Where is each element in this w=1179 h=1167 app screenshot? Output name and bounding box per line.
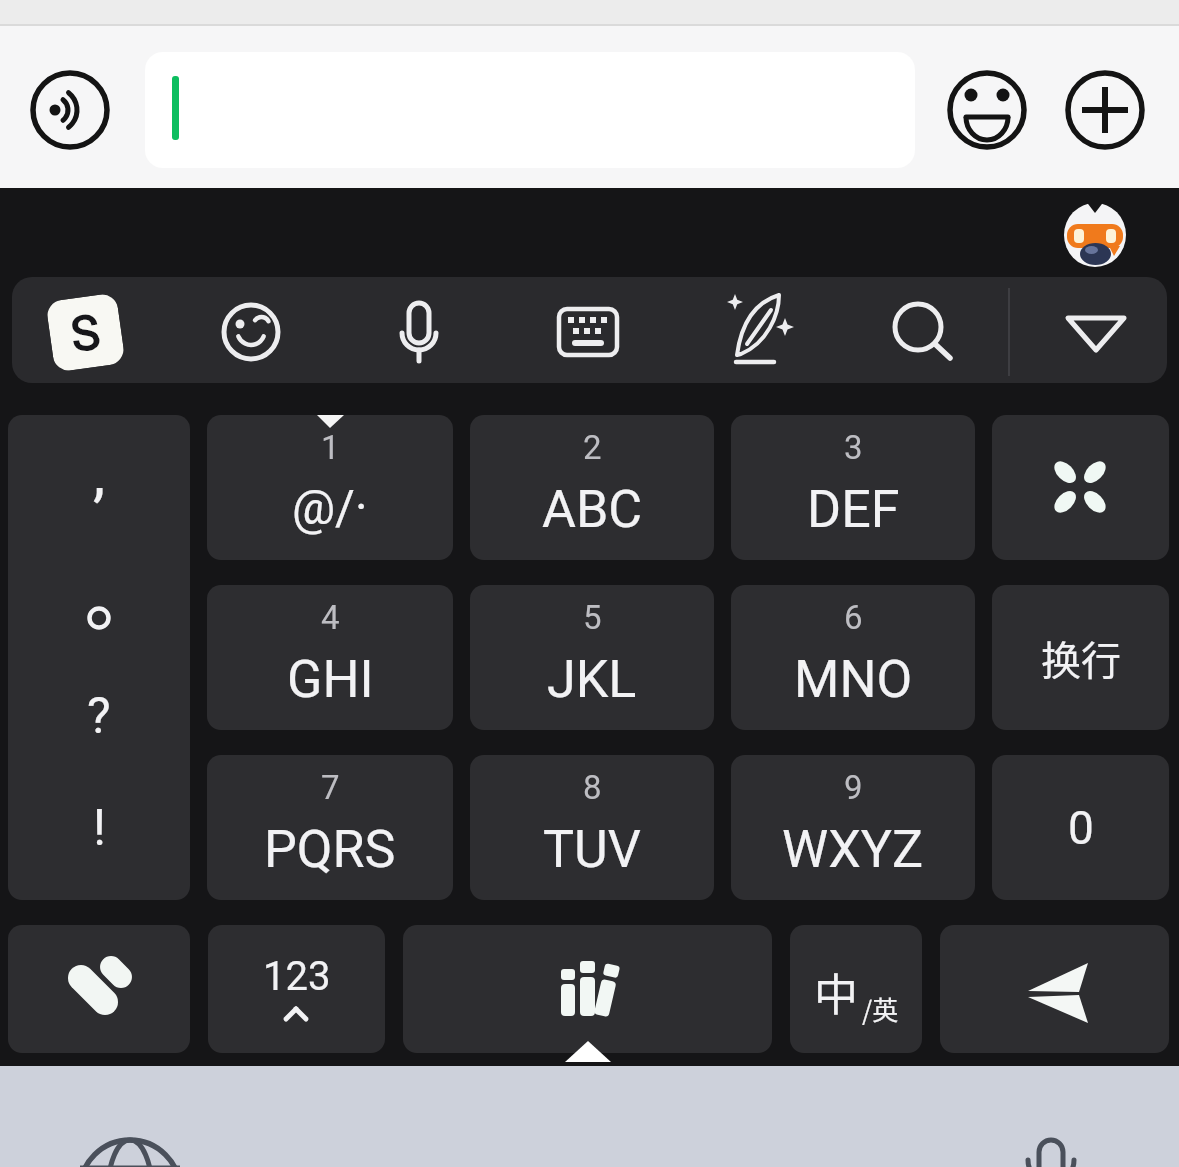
staticText: GHI bbox=[287, 649, 374, 710]
button[interactable] bbox=[8, 925, 190, 1053]
button[interactable] bbox=[992, 415, 1169, 560]
staticText: DEF bbox=[807, 479, 900, 540]
staticText: ! bbox=[93, 799, 106, 858]
button[interactable]: 6 bbox=[731, 585, 975, 730]
staticText: 4 bbox=[321, 598, 340, 637]
button[interactable]: , bbox=[8, 415, 190, 900]
button[interactable] bbox=[35, 284, 135, 378]
button[interactable]: 9 bbox=[731, 755, 975, 900]
staticText: 3 bbox=[844, 428, 863, 467]
button[interactable] bbox=[145, 52, 915, 168]
button[interactable]: 2 bbox=[470, 415, 714, 560]
button[interactable]: 0 bbox=[992, 755, 1169, 900]
button[interactable]: 换行 bbox=[992, 585, 1169, 730]
button[interactable]: 7 bbox=[207, 755, 453, 900]
staticText: 中 bbox=[814, 960, 858, 1024]
staticText: 换行 bbox=[1041, 629, 1121, 687]
button[interactable]: 3 bbox=[731, 415, 975, 560]
staticText: TUV bbox=[543, 819, 641, 880]
button[interactable] bbox=[991, 1110, 1111, 1167]
button[interactable] bbox=[201, 284, 301, 378]
staticText: 6 bbox=[844, 598, 863, 637]
button[interactable] bbox=[70, 1110, 190, 1167]
button[interactable] bbox=[369, 284, 469, 378]
staticText: 2 bbox=[583, 428, 602, 467]
button[interactable] bbox=[1046, 284, 1146, 378]
staticText: 123 bbox=[263, 953, 331, 1000]
staticText: ABC bbox=[542, 479, 643, 540]
button[interactable] bbox=[403, 925, 772, 1053]
button[interactable] bbox=[871, 284, 971, 378]
staticText: 5 bbox=[583, 598, 602, 637]
button[interactable]: 中 bbox=[790, 925, 922, 1053]
button[interactable] bbox=[538, 284, 638, 378]
button[interactable] bbox=[947, 70, 1027, 150]
staticText: ? bbox=[87, 687, 111, 746]
button[interactable] bbox=[940, 925, 1169, 1053]
button[interactable]: 8 bbox=[470, 755, 714, 900]
staticText: 9 bbox=[844, 768, 863, 807]
staticText: , bbox=[93, 437, 106, 510]
staticText: MNO bbox=[794, 649, 913, 710]
button[interactable]: 5 bbox=[470, 585, 714, 730]
button[interactable]: 1 bbox=[207, 415, 453, 560]
staticText: WXYZ bbox=[782, 819, 924, 880]
staticText: JKL bbox=[547, 649, 637, 710]
button[interactable]: 4 bbox=[207, 585, 453, 730]
button[interactable]: 123 bbox=[208, 925, 385, 1053]
staticText: S bbox=[67, 303, 104, 363]
staticText: 7 bbox=[321, 768, 340, 807]
staticText: 0 bbox=[1068, 801, 1094, 855]
button[interactable] bbox=[30, 70, 110, 150]
button[interactable] bbox=[1065, 70, 1145, 150]
staticText: @/· bbox=[292, 479, 368, 535]
staticText: PQRS bbox=[264, 819, 396, 880]
button[interactable] bbox=[706, 284, 806, 378]
staticText: 1 bbox=[321, 428, 340, 467]
staticText: 8 bbox=[583, 768, 602, 807]
staticText: /英 bbox=[862, 990, 899, 1028]
